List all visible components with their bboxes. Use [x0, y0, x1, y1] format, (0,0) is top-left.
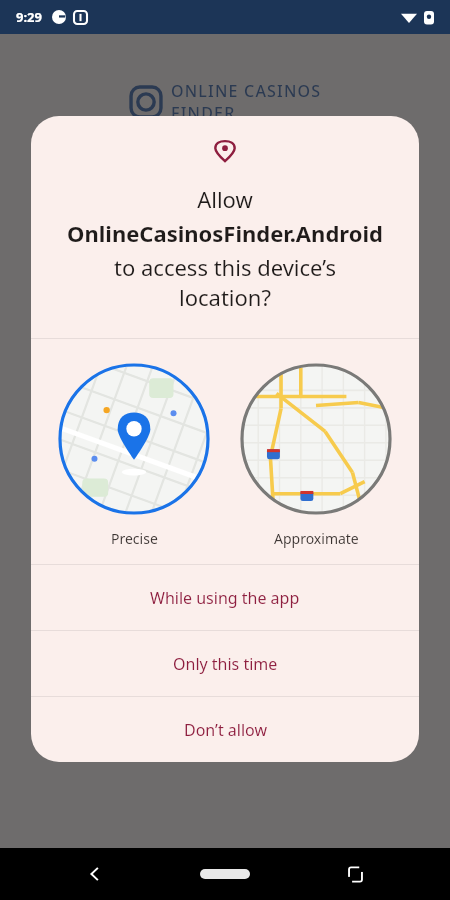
button[interactable]: While using the app — [31, 565, 419, 630]
staticText: Precise — [111, 529, 158, 548]
staticText: While using the app — [150, 587, 300, 609]
staticText: FINDER — [171, 102, 236, 124]
staticText: to access this device’s location? — [31, 252, 419, 312]
button[interactable]: Approximate — [236, 359, 396, 552]
button[interactable]: Precise — [54, 359, 214, 552]
staticText: Don’t allow — [184, 719, 267, 741]
staticText: Allow — [31, 184, 419, 214]
staticText: 9:29 — [16, 8, 42, 26]
staticText: ONLINE CASINOS — [171, 80, 322, 102]
button[interactable]: Back — [71, 850, 119, 898]
button[interactable]: Only this time — [31, 631, 419, 696]
button[interactable]: Don’t allow — [31, 697, 419, 762]
button[interactable]: Home — [190, 854, 260, 894]
button[interactable]: Recent apps — [331, 850, 379, 898]
staticText: OnlineCasinosFinder.Android — [39, 218, 411, 248]
staticText: Approximate — [274, 529, 359, 548]
staticText: Only this time — [173, 653, 278, 675]
